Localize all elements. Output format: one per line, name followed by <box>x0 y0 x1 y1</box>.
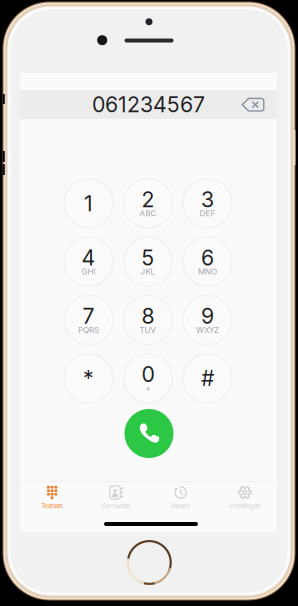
staticText: Contacten <box>102 502 131 510</box>
staticText: 4 <box>81 245 95 271</box>
button[interactable]: Contacten <box>84 481 148 532</box>
button[interactable]: Instellingen <box>213 481 277 532</box>
staticText: WXYZ <box>196 325 219 335</box>
button[interactable]: Toetsen <box>20 481 84 532</box>
button[interactable]: 6 <box>183 237 232 286</box>
staticText: JKL <box>140 267 155 277</box>
staticText: 0 <box>141 361 154 387</box>
staticText: 5 <box>141 245 154 271</box>
staticText: 061234567 <box>92 92 205 117</box>
staticText: * <box>83 365 94 391</box>
button[interactable]: 1 <box>64 179 113 228</box>
staticText: + <box>145 383 150 393</box>
button[interactable]: # <box>183 354 232 403</box>
staticText: 9 <box>201 303 214 329</box>
staticText: TUV <box>139 325 156 335</box>
button[interactable]: Recent <box>148 481 213 532</box>
button[interactable]: 2 <box>123 179 172 228</box>
button[interactable]: 7 <box>64 295 113 344</box>
button[interactable]: 3 <box>183 179 232 228</box>
staticText: 7 <box>82 303 94 329</box>
staticText: # <box>201 365 214 391</box>
button[interactable]: 0 <box>123 354 172 403</box>
staticText: Toetsen <box>41 502 63 510</box>
staticText: MNO <box>198 267 217 277</box>
staticText: DEF <box>199 209 215 218</box>
button[interactable]: 8 <box>123 295 172 344</box>
staticText: 6 <box>201 245 214 271</box>
staticText: GHI <box>81 267 95 277</box>
button[interactable]: Delete <box>241 98 264 112</box>
staticText: 3 <box>201 186 214 212</box>
button[interactable]: 9 <box>183 295 232 344</box>
staticText: PQRS <box>78 325 99 335</box>
button[interactable]: 4 <box>64 237 113 286</box>
staticText: 8 <box>141 303 154 329</box>
staticText: ABC <box>139 209 156 218</box>
button[interactable]: 5 <box>123 237 172 286</box>
staticText: 1 <box>84 190 93 216</box>
button[interactable]: Call <box>124 409 173 458</box>
staticText: Instellingen <box>229 502 261 510</box>
button[interactable]: * <box>64 354 113 403</box>
staticText: Recent <box>171 502 190 510</box>
staticText: 2 <box>141 186 154 212</box>
